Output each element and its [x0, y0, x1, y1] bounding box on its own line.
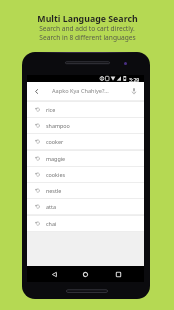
- button[interactable]: atta: [27, 198, 144, 214]
- button[interactable]: Back: [47, 267, 62, 282]
- button[interactable]: cooker: [27, 133, 144, 149]
- button[interactable]: Voice search: [123, 82, 144, 100]
- staticText: Multi Language Search: [37, 13, 138, 25]
- button[interactable]: nestle: [27, 182, 144, 198]
- button[interactable]: Home: [78, 267, 93, 282]
- staticText: Aapko Kya Chahiye?...: [52, 87, 109, 95]
- staticText: Search in 8 different languages: [39, 33, 136, 42]
- staticText: rice: [46, 106, 56, 113]
- staticText: atta: [46, 203, 56, 210]
- staticText: chai: [46, 220, 57, 227]
- button[interactable]: cookies: [27, 166, 144, 182]
- staticText: nestle: [46, 187, 62, 194]
- button[interactable]: chai: [27, 215, 144, 231]
- staticText: cookies: [46, 171, 66, 178]
- button[interactable]: Recent apps: [111, 267, 126, 282]
- button[interactable]: rice: [27, 101, 144, 117]
- staticText: shampoo: [46, 122, 70, 129]
- staticText: 3:29: [129, 76, 140, 83]
- button[interactable]: maggie: [27, 150, 144, 166]
- staticText: cooker: [46, 138, 64, 145]
- button[interactable]: Back: [27, 82, 144, 100]
- button[interactable]: Back: [27, 82, 46, 100]
- staticText: maggie: [46, 155, 66, 162]
- button[interactable]: shampoo: [27, 117, 144, 133]
- staticText: Search and add to cart directly.: [39, 24, 135, 33]
